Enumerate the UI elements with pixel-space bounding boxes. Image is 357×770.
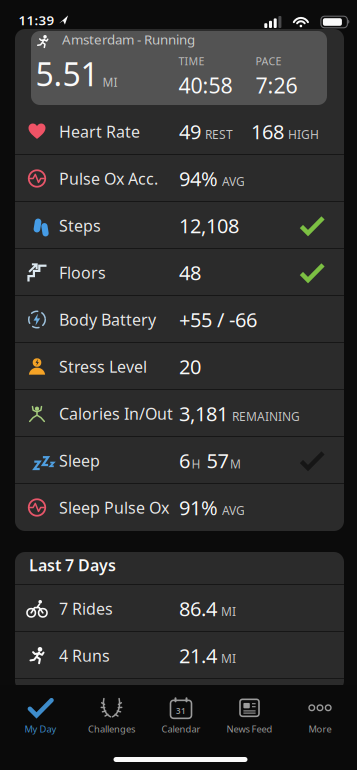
staticText: 86.4	[179, 595, 217, 622]
staticText: 7:26	[255, 71, 297, 99]
staticText: News Feed	[226, 723, 272, 735]
button[interactable]: Pulse Ox Acc.	[15, 155, 344, 202]
staticText: Calories In/Out	[59, 403, 173, 424]
staticText: H	[191, 456, 200, 472]
button[interactable]: Heart Rate	[15, 108, 344, 155]
staticText: Last 7 Days	[29, 554, 116, 576]
staticText: 40:58	[178, 71, 232, 99]
button[interactable]: My Day	[6, 692, 74, 738]
staticText: 49	[179, 118, 201, 145]
button[interactable]: Stress Level	[15, 343, 344, 390]
button[interactable]: Body Battery	[15, 296, 344, 343]
button[interactable]: More	[286, 692, 354, 738]
button[interactable]: Sleep Pulse Ox	[15, 484, 344, 531]
staticText: TIME	[178, 54, 204, 68]
button[interactable]: Amsterdam - Running	[31, 31, 327, 105]
button[interactable]: 4 Runs	[15, 632, 344, 679]
staticText: Heart Rate	[59, 121, 140, 142]
staticText: 168	[251, 118, 284, 145]
staticText: M	[230, 456, 241, 472]
staticText: HIGH	[288, 126, 319, 142]
staticText: AVG	[222, 173, 245, 189]
staticText: 21.4	[179, 642, 217, 669]
staticText: 5.51	[35, 52, 98, 95]
staticText: Amsterdam - Running	[62, 30, 195, 48]
staticText: Stress Level	[59, 356, 147, 377]
staticText: 48	[179, 259, 201, 286]
button[interactable]: Challenges	[77, 692, 145, 738]
staticText: 94%	[179, 165, 218, 192]
staticText: Calendar	[161, 723, 200, 735]
staticText: AVG	[222, 502, 245, 518]
button[interactable]: Floors	[15, 249, 344, 296]
staticText: MI	[102, 74, 117, 90]
staticText: 6	[179, 447, 190, 474]
staticText: Steps	[59, 215, 101, 236]
staticText: 31	[176, 705, 186, 716]
staticText: Sleep Pulse Ox	[59, 497, 169, 518]
staticText: 12,108	[179, 212, 239, 239]
staticText: 7 Rides	[59, 598, 113, 619]
staticText: Pulse Ox Acc.	[59, 168, 158, 189]
staticText: Floors	[59, 262, 106, 283]
button[interactable]: 31	[147, 692, 215, 738]
staticText: REMAINING	[232, 408, 300, 424]
staticText: PACE	[255, 54, 281, 68]
staticText: 91%	[179, 494, 218, 521]
button[interactable]: Sleep	[15, 437, 344, 484]
staticText: 3,181	[179, 400, 228, 427]
staticText: My Day	[24, 723, 56, 735]
staticText: 11:39	[18, 11, 54, 29]
staticText: Body Battery	[59, 309, 156, 330]
button[interactable]: Steps	[15, 202, 344, 249]
staticText: MI	[221, 650, 236, 666]
staticText: More	[308, 723, 331, 735]
staticText: Challenges	[88, 723, 135, 735]
button[interactable]: 7 Rides	[15, 585, 344, 632]
staticText: 57	[206, 447, 228, 474]
button[interactable]: News Feed	[215, 692, 283, 738]
staticText: 20	[179, 353, 201, 380]
staticText: 4 Runs	[59, 645, 110, 666]
staticText: +55 / -66	[179, 306, 257, 333]
button[interactable]: Calories In/Out	[15, 390, 344, 437]
staticText: Sleep	[59, 450, 100, 471]
staticText: MI	[221, 603, 236, 619]
staticText: REST	[205, 126, 233, 142]
